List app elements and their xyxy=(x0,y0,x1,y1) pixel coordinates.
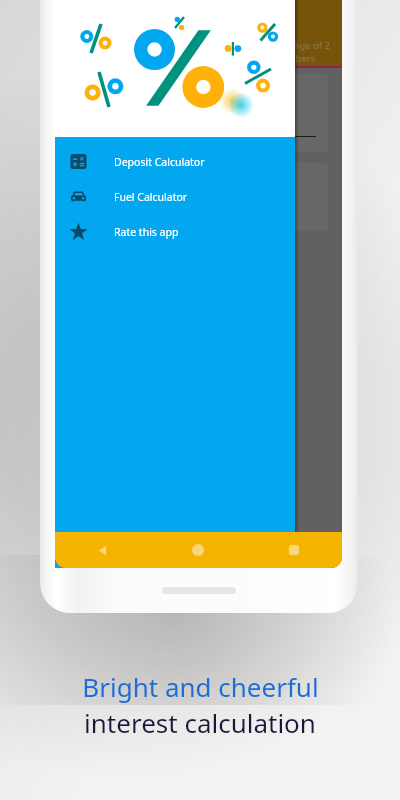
button[interactable]: Rate this app xyxy=(55,214,295,249)
button[interactable]: Back xyxy=(55,532,150,568)
staticText: interest calculation xyxy=(84,705,316,740)
button[interactable]: Recents xyxy=(246,532,342,568)
staticText: Deposit Calculator xyxy=(114,155,205,169)
button[interactable]: Fuel Calculator xyxy=(55,179,295,214)
staticText: Rate this app xyxy=(114,225,179,239)
button[interactable]: Deposit Calculator xyxy=(55,144,295,179)
button[interactable]: Home xyxy=(150,532,246,568)
staticText: Percentage of 2 xyxy=(260,39,330,52)
staticText: numbers xyxy=(275,52,316,65)
staticText: Bright and cheerful xyxy=(82,669,319,704)
staticText: Fuel Calculator xyxy=(114,190,188,204)
